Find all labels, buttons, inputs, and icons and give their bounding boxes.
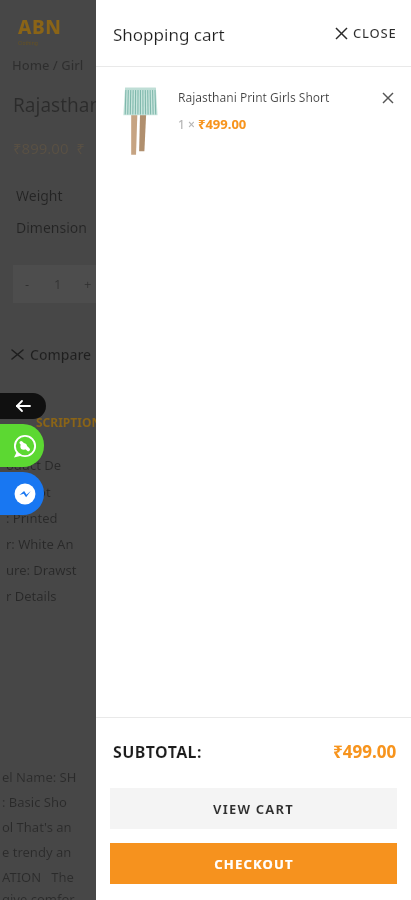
button[interactable]: WhatsApp — [0, 424, 44, 467]
staticText: Clothing — [18, 40, 38, 47]
staticText: ATION The — [2, 868, 74, 886]
staticText: ure: Drawst — [6, 561, 77, 579]
staticText: ABN — [18, 14, 62, 40]
button[interactable]: + — [75, 265, 101, 303]
button[interactable]: Remove item — [375, 85, 401, 111]
staticText: Rajasthani Print Girls Short — [178, 89, 330, 105]
staticText: r: White An — [6, 535, 74, 553]
button[interactable]: CLOSE — [332, 18, 401, 48]
staticText: Shopping cart — [113, 23, 225, 46]
staticText: ₹499.00 — [333, 740, 397, 763]
staticText: Compare — [30, 345, 92, 364]
staticText: Dimension — [16, 218, 87, 237]
staticText: el Name: SH — [2, 768, 77, 786]
button[interactable]: Messenger — [0, 472, 44, 515]
staticText: CHECKOUT — [214, 855, 294, 873]
staticText: e trendy an — [2, 843, 72, 861]
button[interactable]: Back — [0, 393, 46, 419]
staticText: Weight — [16, 186, 63, 205]
staticText: oduct De — [6, 456, 62, 474]
staticText: give comfor — [2, 890, 75, 900]
staticText: + — [84, 275, 92, 293]
staticText: 1 × — [178, 116, 198, 132]
staticText: : Basic Sho — [2, 793, 67, 811]
staticText: ₹899.00 ₹ — [13, 138, 85, 158]
staticText: Home / Girl — [12, 56, 84, 74]
button[interactable]: CHECKOUT — [110, 843, 397, 884]
staticText: - — [25, 275, 30, 293]
staticText: ol That's an — [2, 818, 72, 836]
staticText: CLOSE — [353, 24, 397, 42]
staticText: SUBTOTAL: — [113, 741, 202, 763]
staticText: Rajasthan — [13, 92, 102, 118]
button[interactable]: Rajasthani Print Girls Short — [96, 67, 411, 157]
button[interactable]: VIEW CART — [110, 788, 397, 829]
staticText: r Details — [6, 587, 57, 605]
staticText: 1 — [54, 275, 62, 293]
staticText: VIEW CART — [213, 800, 294, 818]
staticText: SCRIPTION — [36, 414, 102, 430]
staticText: ure Cot — [6, 483, 51, 501]
staticText: : Printed — [6, 509, 58, 527]
staticText: ₹499.00 — [198, 115, 247, 133]
